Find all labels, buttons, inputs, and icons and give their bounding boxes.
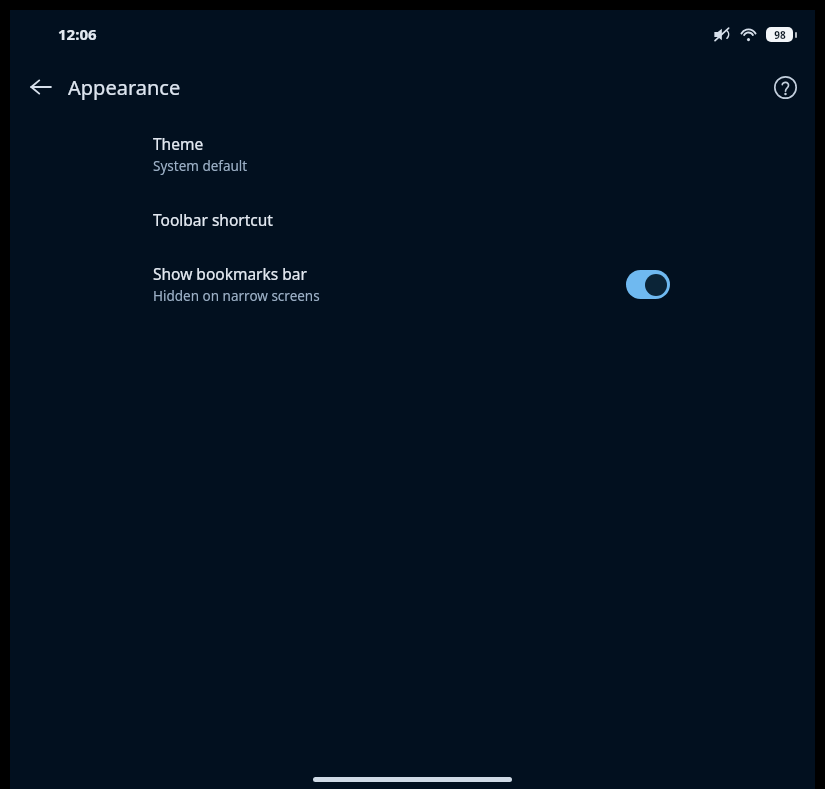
staticText: Hidden on narrow screens <box>153 287 320 305</box>
staticText: 12:06 <box>58 24 97 44</box>
staticText: System default <box>153 157 248 175</box>
staticText: Show bookmarks bar <box>153 263 307 284</box>
staticText: Appearance <box>68 74 181 101</box>
button[interactable]: Theme <box>10 116 815 193</box>
staticText: Theme <box>153 133 204 154</box>
staticText: 98 <box>774 28 786 42</box>
staticText: Toolbar shortcut <box>153 209 273 230</box>
button[interactable]: Show bookmarks bar <box>10 247 815 321</box>
button[interactable]: Toolbar shortcut <box>10 193 815 247</box>
button[interactable]: Help <box>763 65 807 109</box>
button[interactable]: Show bookmarks bar toggle <box>626 270 670 299</box>
button[interactable]: Back <box>18 64 64 110</box>
